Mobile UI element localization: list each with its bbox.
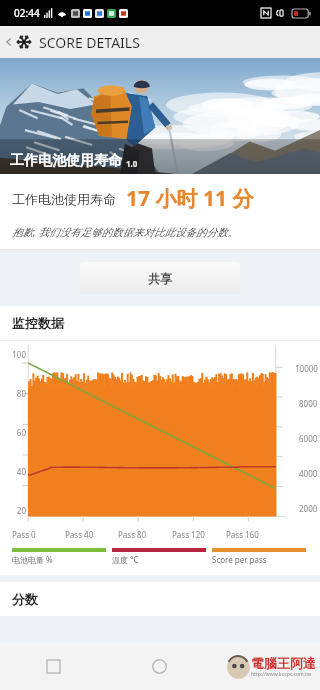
staticText: SCORE DETAILS [39, 33, 140, 52]
staticText: 20 [0, 505, 26, 516]
staticText: 分数 [12, 591, 38, 607]
staticText: 電腦王阿達 [251, 655, 316, 671]
staticText: 6000 [299, 433, 318, 444]
button[interactable]: Back [0, 26, 320, 58]
staticText: 工作电池使用寿命 [12, 191, 116, 207]
staticText: 100 [0, 349, 26, 360]
staticText: 02:44 [14, 6, 40, 20]
staticText: Pass 40 [65, 529, 118, 540]
staticText: 抱歉, 我们没有足够的数据来对比此设备的分数。 [12, 225, 238, 239]
button[interactable]: Recents [0, 642, 106, 690]
staticText: 40 [0, 466, 26, 477]
staticText: 4000 [299, 468, 318, 479]
staticText: 电池电量 % [12, 554, 53, 565]
staticText: 8000 [299, 398, 318, 409]
staticText: Pass 160 [226, 529, 280, 540]
staticText: Pass 120 [172, 529, 226, 540]
staticText: 60 [0, 427, 26, 438]
staticText: 温度 °C [112, 554, 139, 565]
staticText: http://www.kocpc.com.tw [251, 671, 311, 678]
staticText: 工作电池使用寿命 [10, 152, 122, 170]
button[interactable]: Home [106, 642, 213, 690]
staticText: 监控数据 [12, 315, 64, 331]
staticText: 2000 [299, 503, 318, 514]
staticText: Pass 80 [118, 529, 172, 540]
staticText: Score per pass [212, 554, 267, 565]
staticText: 1.0 [126, 158, 138, 169]
staticText: Pass 0 [12, 529, 65, 540]
staticText: 10000 [295, 363, 318, 374]
staticText: 17 小时 11 分 [126, 184, 254, 213]
staticText: 共享 [148, 271, 172, 286]
button[interactable]: 共享 [80, 262, 240, 294]
staticText: 80 [0, 388, 26, 399]
